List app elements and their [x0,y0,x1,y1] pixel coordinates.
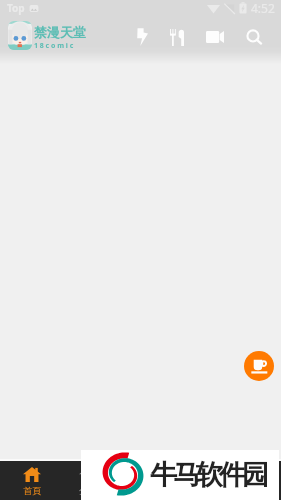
button[interactable]: 書架 [171,461,226,496]
staticText: 牛马软件园 [152,458,267,492]
staticText: 禁漫天堂 [34,24,86,40]
staticText: Top [7,1,25,15]
button[interactable]: Restaurant [163,23,191,51]
staticText: 首頁 [23,485,41,496]
staticText: 18comic [34,41,76,51]
staticText: 4:52 [251,0,275,16]
button[interactable]: Flash [128,23,156,51]
button[interactable]: 首頁 [4,461,60,496]
button[interactable]: Coffee [244,351,274,381]
staticText: 我的 [245,485,263,496]
button[interactable]: Video [201,23,229,51]
button[interactable]: Search [240,23,268,51]
button[interactable]: 排行 [116,461,171,496]
staticText: 書架 [190,485,208,496]
staticText: 排行 [135,485,153,496]
staticText: 分類 [79,485,97,496]
button[interactable]: 分類 [60,461,116,496]
button[interactable]: 我的 [226,461,281,496]
button[interactable]: 禁漫天堂 [8,21,86,50]
